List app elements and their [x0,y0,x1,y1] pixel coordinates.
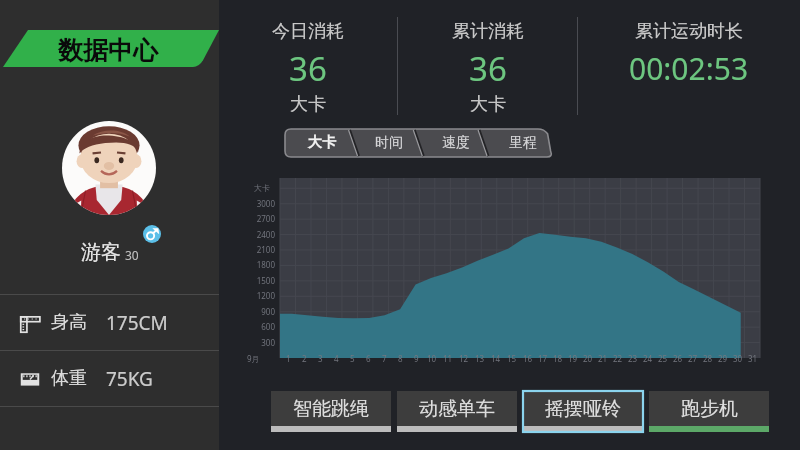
staticText: 36 [469,46,507,91]
staticText: 21 [598,353,608,364]
button[interactable]: 速度 [419,129,486,157]
staticText: 00:02:53 [629,48,749,89]
staticText: 30 [125,247,139,263]
staticText: 16 [523,353,533,364]
staticText: 28 [703,353,713,364]
button[interactable]: User avatar [62,121,156,215]
staticText: 大卡 [290,93,326,116]
button[interactable]: 数据中心 [0,30,219,67]
staticText: 12 [459,353,469,364]
staticText: 24 [643,353,653,364]
button[interactable]: 大卡 [285,129,352,157]
staticText: 1800 [249,259,275,270]
staticText: 29 [718,353,728,364]
staticText: 6 [366,353,371,364]
staticText: 大卡 [254,183,270,193]
staticText: 27 [688,353,698,364]
staticText: 8 [398,353,403,364]
staticText: 3 [318,353,323,364]
staticText: 36 [289,46,327,91]
staticText: 大卡 [308,134,336,152]
staticText: 里程 [509,134,537,152]
staticText: 4 [334,353,339,364]
button[interactable]: Gender male [143,225,161,243]
staticText: 25 [658,353,668,364]
staticText: 2 [302,353,307,364]
staticText: 900 [249,306,275,317]
staticText: 22 [613,353,623,364]
staticText: 智能跳绳 [293,397,369,421]
staticText: 身高 [51,311,87,334]
staticText: 20 [583,353,593,364]
staticText: 23 [628,353,638,364]
staticText: 15 [507,353,517,364]
staticText: 3000 [249,198,275,209]
button[interactable]: 动感单车 [397,391,517,432]
staticText: 75KG [106,366,153,392]
staticText: 9月 [247,353,260,364]
staticText: 30 [733,353,743,364]
staticText: 19 [568,353,578,364]
staticText: 2700 [249,213,275,224]
staticText: 11 [443,353,453,364]
button[interactable]: 体重 [0,351,219,406]
staticText: 175CM [106,310,168,336]
staticText: 10 [427,353,437,364]
staticText: 数据中心 [58,35,158,66]
staticText: 时间 [375,134,403,152]
staticText: 大卡 [470,93,506,116]
staticText: 1500 [249,275,275,286]
staticText: 2400 [249,229,275,240]
staticText: 17 [538,353,548,364]
staticText: 动感单车 [419,397,495,421]
staticText: 1 [286,353,291,364]
staticText: 5 [350,353,355,364]
staticText: 14 [491,353,501,364]
staticText: 1200 [249,290,275,301]
staticText: 今日消耗 [272,20,344,43]
staticText: 体重 [51,367,87,390]
button[interactable]: 摇摆哑铃 [523,391,643,432]
staticText: 300 [249,337,275,348]
staticText: 累计运动时长 [635,20,743,43]
staticText: 18 [553,353,563,364]
button[interactable]: 身高 [0,295,219,350]
staticText: 13 [475,353,485,364]
staticText: 31 [748,353,758,364]
staticText: 跑步机 [681,397,738,421]
staticText: 游客 [81,240,121,265]
button[interactable]: 智能跳绳 [271,391,391,432]
button[interactable]: 里程 [486,129,553,157]
staticText: 摇摆哑铃 [545,397,621,421]
button[interactable]: 跑步机 [649,391,769,432]
staticText: 26 [673,353,683,364]
staticText: 2100 [249,244,275,255]
staticText: 600 [249,321,275,332]
button[interactable]: 时间 [352,129,419,157]
staticText: 9 [414,353,419,364]
staticText: 速度 [442,134,470,152]
staticText: 7 [382,353,387,364]
staticText: 累计消耗 [452,20,524,43]
